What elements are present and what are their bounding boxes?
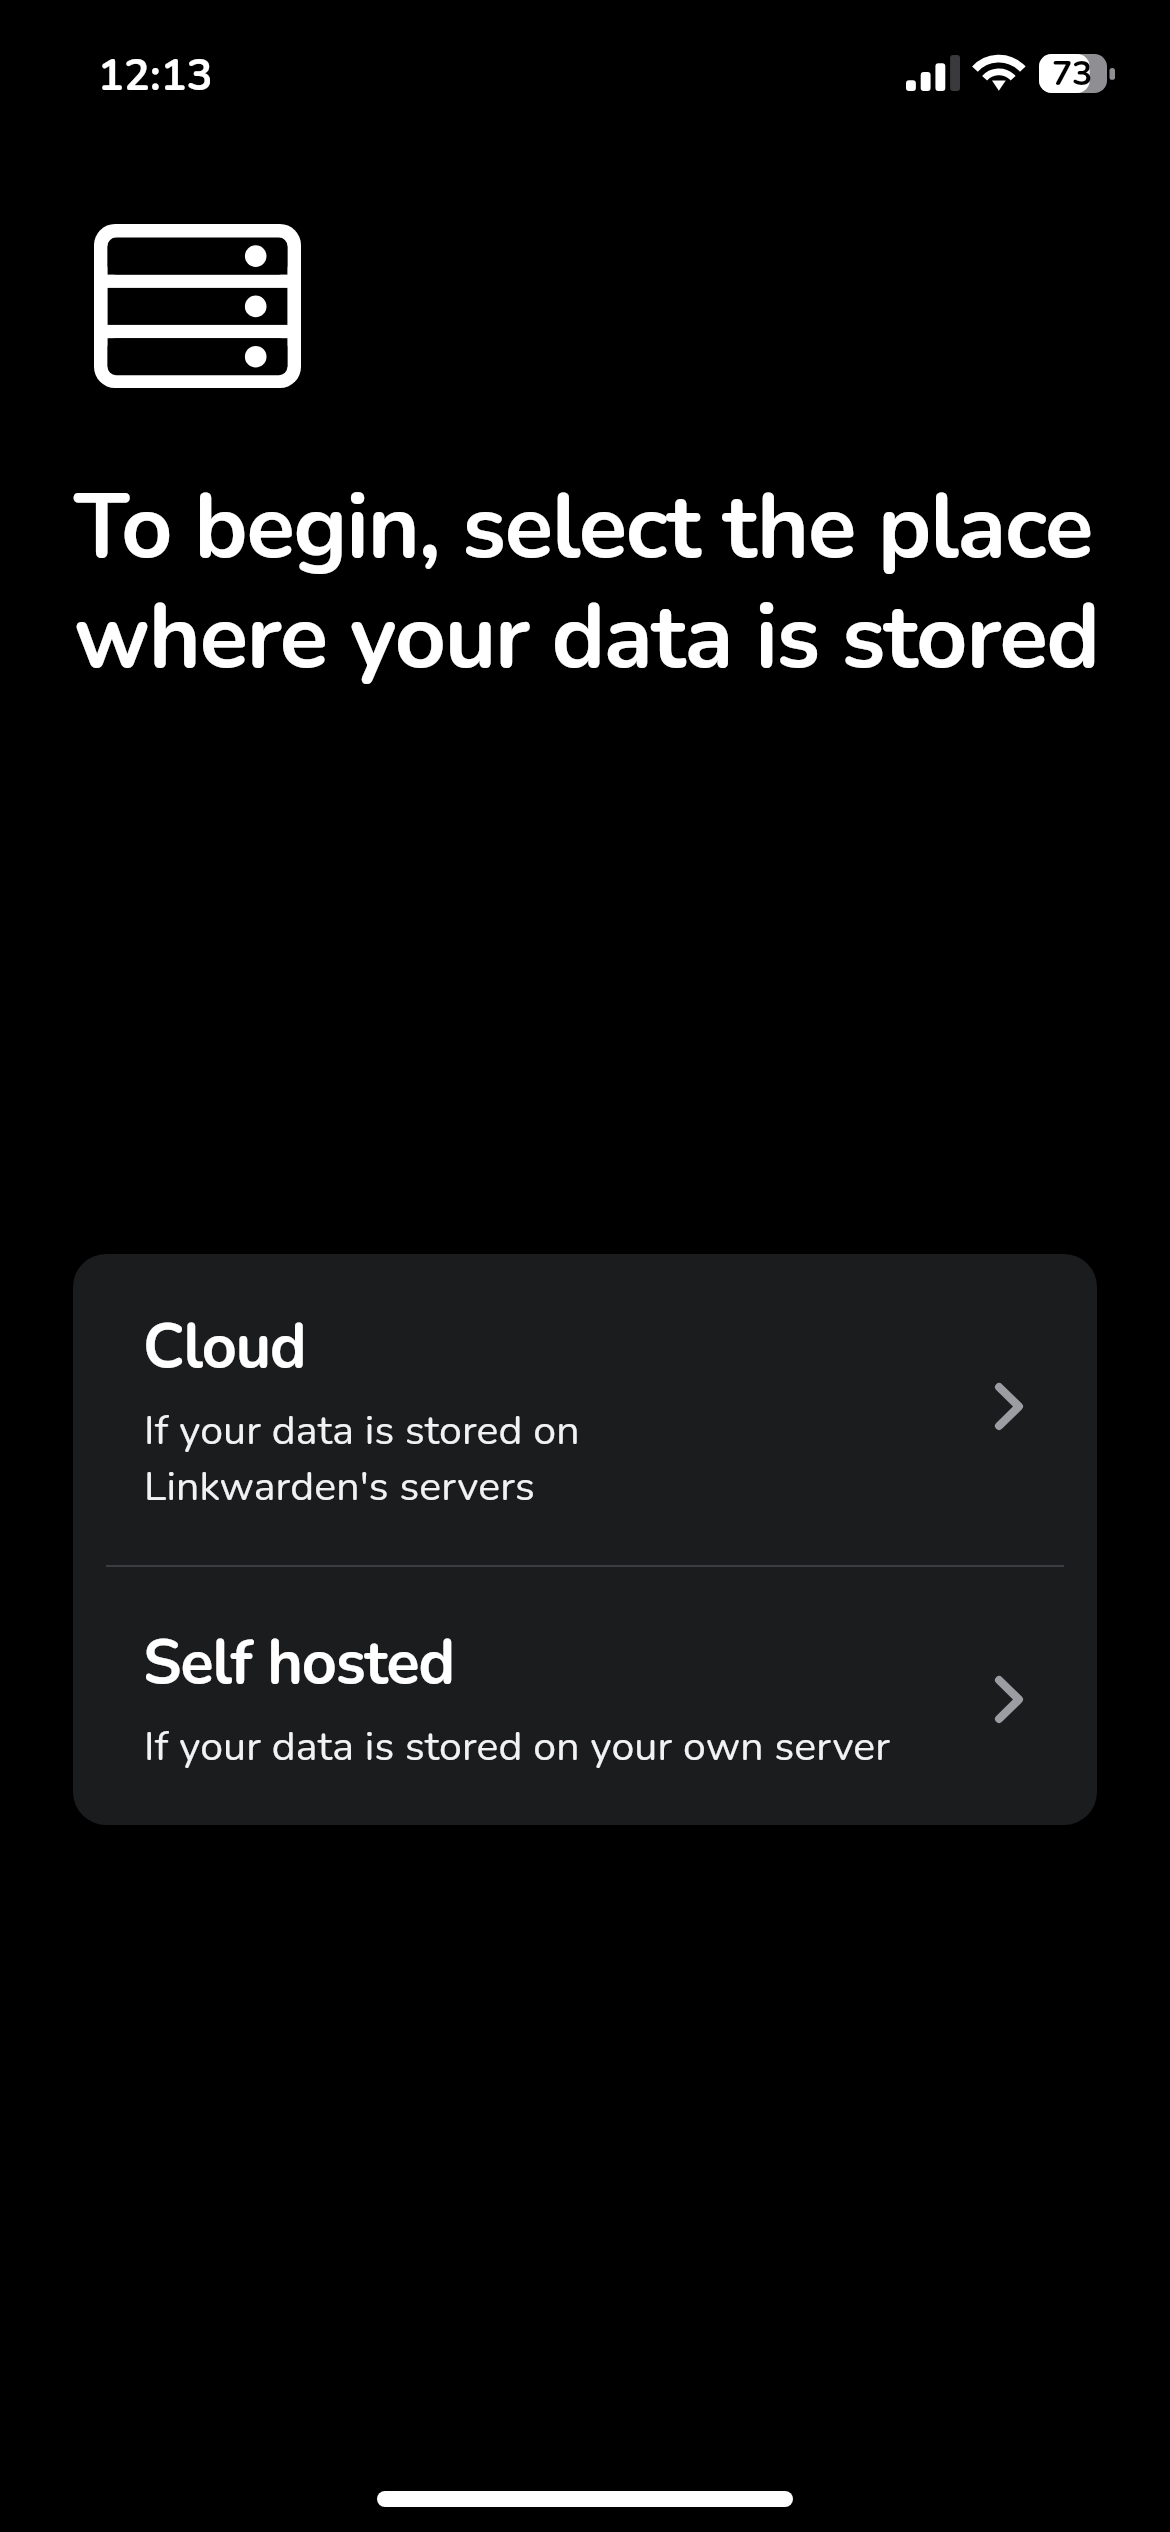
staticText: 12:13	[98, 47, 213, 106]
staticText: Self hosted	[143, 1621, 455, 1704]
staticText: Linkwarden's servers	[144, 1459, 535, 1515]
staticText: Cloud	[143, 1305, 306, 1388]
other: Server	[94, 224, 301, 388]
staticText: To begin, select the place where your da…	[74, 467, 1120, 698]
staticText: 73	[1052, 51, 1092, 97]
other: Open Self hosted	[995, 1676, 1023, 1723]
other: Wi-Fi	[974, 54, 1024, 91]
staticText: If your data is stored on your own serve…	[144, 1719, 891, 1775]
staticText: If your data is stored on	[144, 1403, 580, 1459]
other: Open Cloud	[995, 1383, 1023, 1430]
button[interactable]: Self hosted	[73, 1567, 1097, 1825]
button[interactable]: Cloud	[73, 1254, 1097, 1565]
